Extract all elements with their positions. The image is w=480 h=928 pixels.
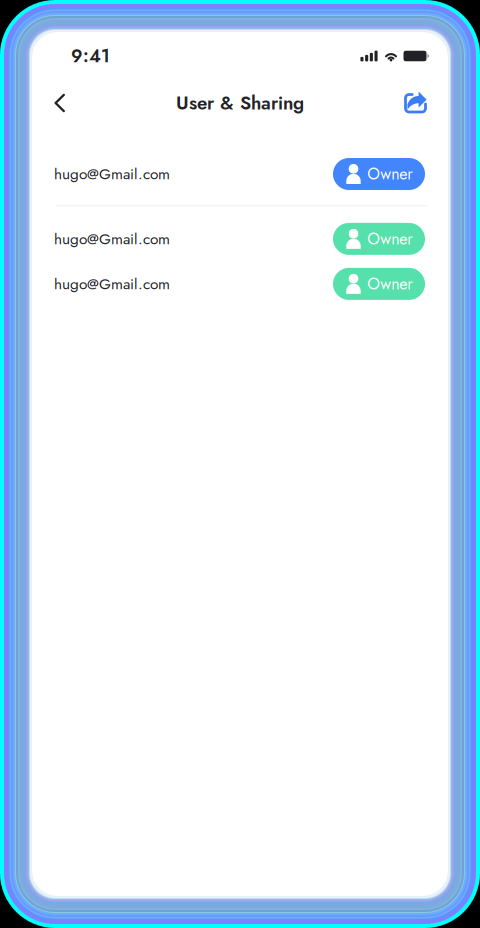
button[interactable]: Owner: [333, 223, 425, 255]
staticText: hugo@Gmail.com: [54, 228, 170, 250]
button[interactable]: Owner: [333, 158, 425, 190]
staticText: Owner: [367, 227, 412, 250]
staticText: hugo@Gmail.com: [54, 273, 170, 295]
button[interactable]: hugo@Gmail.com: [32, 151, 448, 197]
button[interactable]: hugo@Gmail.com: [32, 216, 448, 261]
button[interactable]: Owner: [333, 268, 425, 300]
staticText: 9:41: [71, 43, 110, 69]
button[interactable]: Back: [45, 84, 76, 121]
staticText: User & Sharing: [176, 89, 304, 116]
staticText: hugo@Gmail.com: [54, 163, 170, 185]
staticText: Owner: [367, 272, 412, 295]
button[interactable]: hugo@Gmail.com: [32, 261, 448, 306]
staticText: Owner: [367, 162, 412, 185]
button[interactable]: Share: [396, 84, 434, 122]
